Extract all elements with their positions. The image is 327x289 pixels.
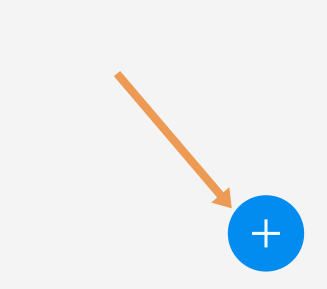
button[interactable]: Add [228, 195, 304, 272]
